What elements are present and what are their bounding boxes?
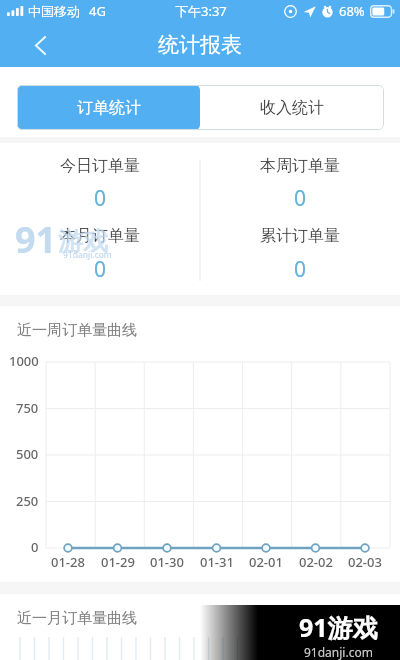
staticText: 统计报表 [158, 32, 242, 58]
staticText: 4G [89, 2, 106, 20]
staticText: 01-29 [101, 553, 135, 571]
staticText: 750 [16, 399, 39, 417]
staticText: 02-03 [348, 553, 382, 571]
staticText: 下午3:37 [175, 2, 227, 20]
staticText: 01-30 [150, 553, 184, 571]
staticText: 02-02 [299, 553, 333, 571]
button[interactable]: 本周订单量 [200, 143, 400, 295]
staticText: 500 [16, 445, 39, 463]
staticText: 本周订单量 [260, 156, 340, 176]
button[interactable]: Back [22, 27, 58, 63]
staticText: 订单统计 [77, 98, 141, 118]
staticText: 01-31 [200, 553, 234, 571]
staticText: 02-01 [249, 553, 283, 571]
staticText: 收入统计 [260, 98, 324, 118]
staticText: 0 [94, 184, 107, 213]
staticText: 91danji.com [304, 644, 373, 660]
button[interactable]: 今日订单量 [0, 143, 200, 295]
button[interactable]: 收入统计 [200, 85, 384, 130]
staticText: 游戏 [58, 226, 108, 257]
button[interactable]: 订单统计 [17, 85, 200, 130]
staticText: 68% [339, 2, 365, 20]
staticText: 中国移动 [28, 3, 80, 19]
staticText: 本月订单量 [60, 226, 140, 246]
staticText: 0 [294, 184, 307, 213]
staticText: 1000 [9, 352, 39, 370]
staticText: 91游戏 [299, 610, 378, 644]
staticText: 近一周订单量曲线 [17, 321, 137, 340]
staticText: 91 [15, 215, 57, 264]
staticText: 0 [31, 538, 39, 556]
staticText: 91danji.com [63, 249, 112, 261]
staticText: 累计订单量 [260, 226, 340, 246]
staticText: 近一月订单量曲线 [17, 609, 137, 628]
staticText: 0 [294, 255, 307, 284]
staticText: 今日订单量 [60, 156, 140, 176]
staticText: 01-28 [51, 553, 85, 571]
staticText: 250 [16, 492, 39, 510]
staticText: 0 [94, 255, 107, 284]
